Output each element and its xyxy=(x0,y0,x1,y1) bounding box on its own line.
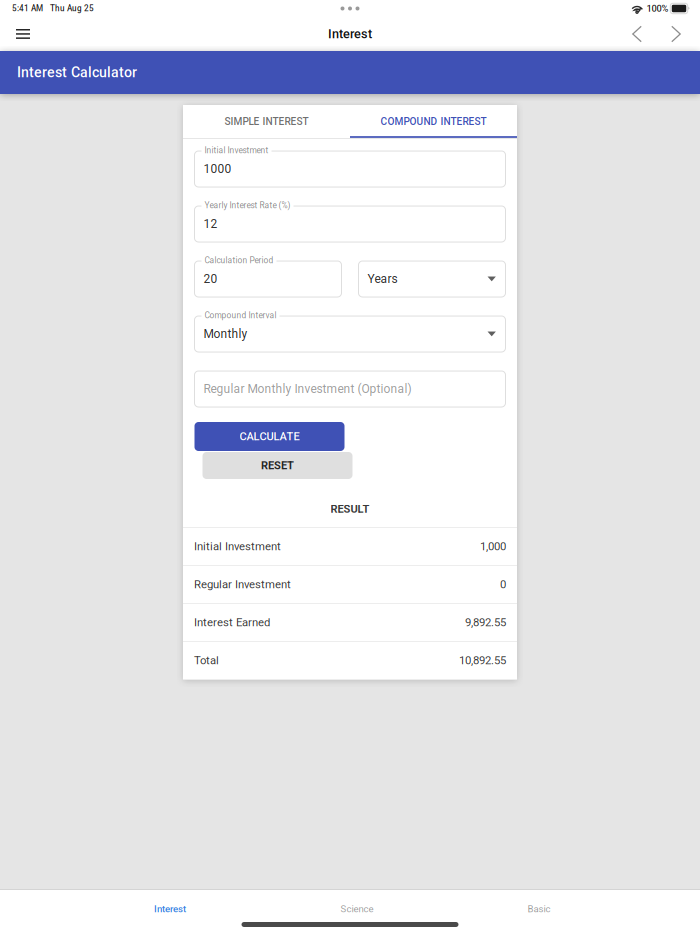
staticText: COMPOUND INTEREST xyxy=(380,116,486,127)
staticText: 1,000 xyxy=(480,540,506,553)
staticText: Years xyxy=(367,272,397,286)
staticText: Compound Interval xyxy=(204,310,276,320)
staticText: Initial Investment xyxy=(204,145,268,155)
staticText: 12 xyxy=(203,217,217,231)
staticText: Thu Aug 25 xyxy=(50,4,94,13)
button[interactable]: SIMPLE INTEREST xyxy=(183,105,350,138)
button[interactable]: Menu xyxy=(6,17,40,51)
staticText: Interest xyxy=(154,903,186,915)
staticText: 20 xyxy=(203,272,217,286)
staticText: Interest xyxy=(328,27,372,41)
staticText: Science xyxy=(340,903,373,915)
staticText: 9,892.55 xyxy=(465,616,506,629)
button[interactable]: Interest xyxy=(77,896,263,922)
staticText: Interest Calculator xyxy=(17,64,137,81)
button[interactable]: Basic xyxy=(451,896,627,922)
staticText: RESET xyxy=(261,459,294,472)
staticText: Calculation Period xyxy=(204,255,273,265)
button[interactable]: Science xyxy=(263,896,451,922)
staticText: CALCULATE xyxy=(239,430,299,443)
staticText: 1000 xyxy=(203,162,231,176)
button[interactable]: COMPOUND INTEREST xyxy=(350,105,517,138)
staticText: Yearly Interest Rate (%) xyxy=(204,200,290,210)
button[interactable]: RESET xyxy=(202,452,352,479)
button[interactable]: Back xyxy=(620,17,654,51)
staticText: Regular Investment xyxy=(194,578,291,591)
staticText: Basic xyxy=(527,903,550,915)
staticText: SIMPLE INTEREST xyxy=(224,116,308,127)
staticText: Monthly xyxy=(203,327,247,341)
staticText: 100% xyxy=(646,3,668,14)
staticText: 10,892.55 xyxy=(459,654,506,667)
button[interactable]: Forward xyxy=(659,17,693,51)
staticText: Interest Earned xyxy=(194,616,270,629)
button[interactable]: CALCULATE xyxy=(194,422,344,451)
staticText: Initial Investment xyxy=(194,540,281,553)
staticText: Total xyxy=(194,654,219,667)
staticText: 0 xyxy=(500,578,506,591)
staticText: RESULT xyxy=(330,502,369,515)
staticText: 5:41 AM xyxy=(12,4,43,13)
staticText: Regular Monthly Investment (Optional) xyxy=(203,382,411,396)
